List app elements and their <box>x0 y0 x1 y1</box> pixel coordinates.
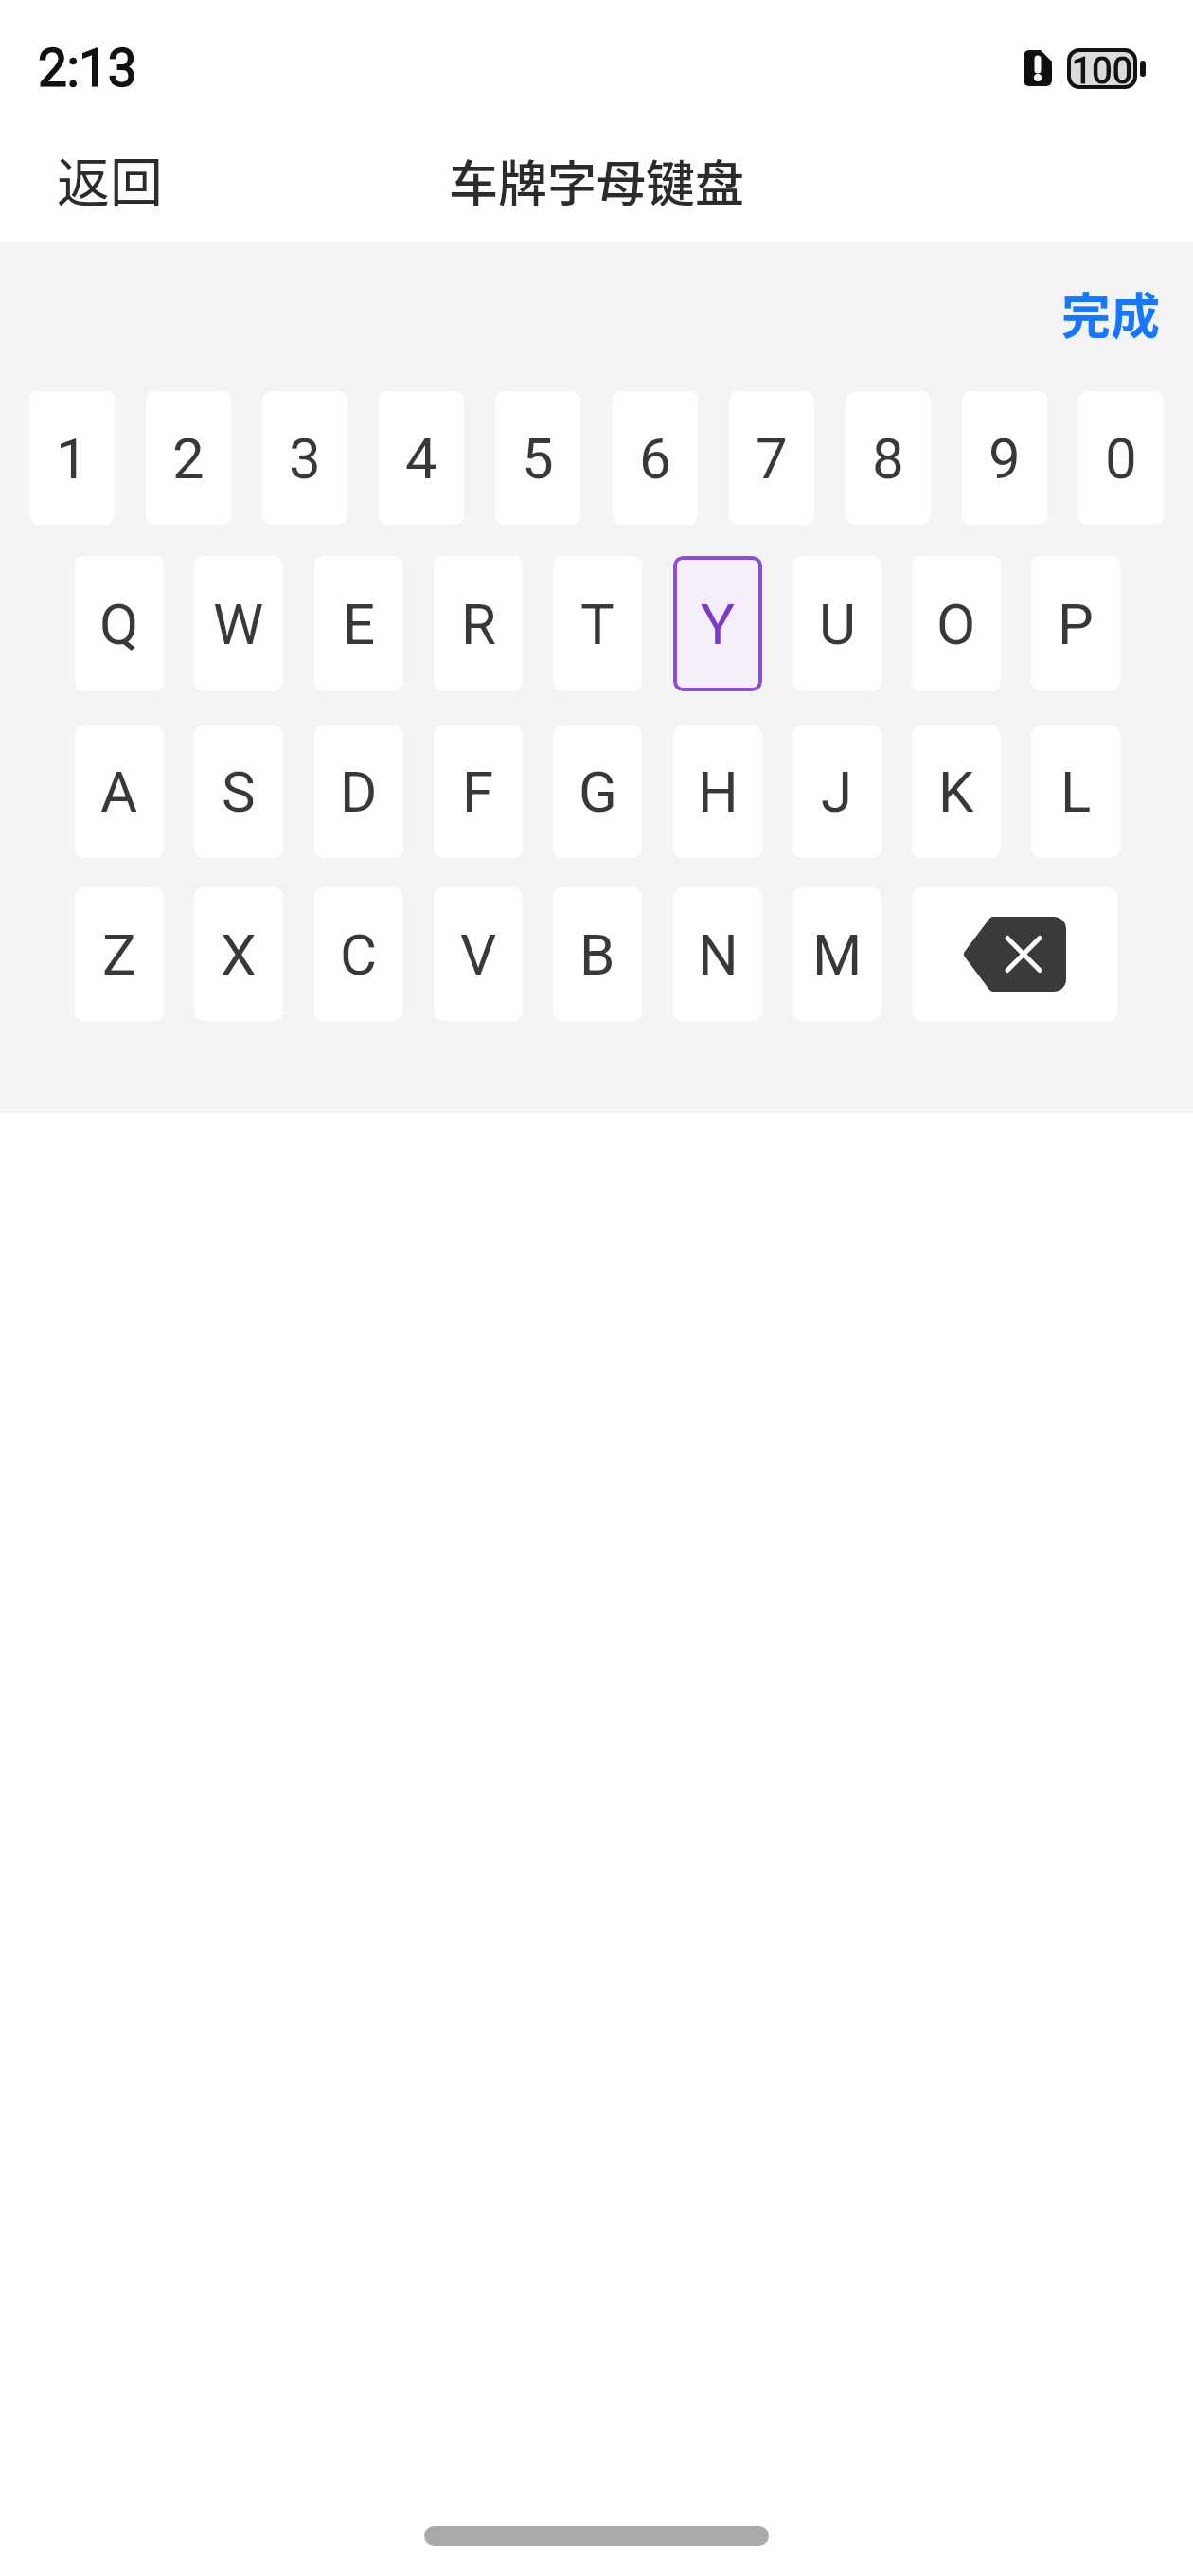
staticText: 2:13 <box>38 38 137 98</box>
staticText: D <box>340 759 378 825</box>
staticText: L <box>1060 759 1092 825</box>
staticText: 6 <box>639 425 671 492</box>
staticText: 返回 <box>57 140 163 217</box>
staticText: O <box>936 591 976 657</box>
button[interactable]: 返回 <box>38 133 144 209</box>
button[interactable]: V <box>434 887 523 1021</box>
staticText: R <box>461 591 496 657</box>
button[interactable]: Q <box>75 556 164 691</box>
staticText: S <box>222 759 256 825</box>
staticText: T <box>580 591 614 657</box>
staticText: Z <box>102 921 136 988</box>
button[interactable]: 0 <box>1078 391 1164 525</box>
staticText: 5 <box>522 425 554 492</box>
button[interactable]: F <box>434 725 523 858</box>
button[interactable]: Z <box>75 887 164 1021</box>
staticText: Y <box>701 591 736 657</box>
button[interactable] <box>912 887 1117 1021</box>
staticText: P <box>1058 591 1094 657</box>
button[interactable]: H <box>673 725 762 858</box>
staticText: V <box>460 921 497 988</box>
button[interactable]: 完成 <box>1049 268 1148 339</box>
staticText: 100 <box>1071 50 1133 93</box>
staticText: B <box>579 921 615 988</box>
staticText: W <box>213 591 264 657</box>
staticText: 3 <box>289 425 321 492</box>
staticText: M <box>812 921 863 988</box>
staticText: N <box>698 921 739 988</box>
button[interactable]: T <box>553 556 642 691</box>
staticText: 8 <box>872 425 904 492</box>
button[interactable]: Y <box>673 556 762 691</box>
button[interactable]: 8 <box>846 391 931 525</box>
staticText: H <box>698 759 739 825</box>
staticText: A <box>100 759 138 825</box>
button[interactable]: 5 <box>495 391 580 525</box>
button[interactable]: 2 <box>146 391 231 525</box>
button[interactable]: P <box>1031 556 1120 691</box>
staticText: G <box>579 759 617 825</box>
staticText: 9 <box>988 425 1021 492</box>
button[interactable]: S <box>194 725 283 858</box>
button[interactable]: O <box>912 556 1001 691</box>
button[interactable]: 7 <box>729 391 814 525</box>
staticText: 4 <box>405 425 437 492</box>
staticText: 完成 <box>1061 277 1161 349</box>
staticText: X <box>221 921 257 988</box>
button[interactable]: 9 <box>962 391 1047 525</box>
button[interactable]: 3 <box>262 391 347 525</box>
button[interactable]: R <box>434 556 523 691</box>
button[interactable]: 4 <box>379 391 464 525</box>
staticText: 车牌字母键盘 <box>449 145 745 216</box>
button[interactable]: W <box>194 556 283 691</box>
button[interactable]: A <box>75 725 164 858</box>
staticText: 0 <box>1105 425 1137 492</box>
staticText: 7 <box>756 425 788 492</box>
button[interactable]: 1 <box>29 391 115 525</box>
staticText: Q <box>99 591 139 657</box>
button[interactable]: K <box>912 725 1001 858</box>
staticText: K <box>938 759 974 825</box>
button[interactable]: D <box>314 725 403 858</box>
staticText: 1 <box>56 425 88 492</box>
staticText: 2 <box>172 425 205 492</box>
button[interactable]: 6 <box>613 391 698 525</box>
button[interactable]: X <box>194 887 283 1021</box>
button[interactable]: M <box>792 887 881 1021</box>
staticText: U <box>819 591 856 657</box>
button[interactable]: C <box>314 887 403 1021</box>
staticText: E <box>343 591 376 657</box>
staticText: C <box>340 921 378 988</box>
button[interactable]: B <box>553 887 642 1021</box>
staticText: J <box>821 759 853 825</box>
button[interactable]: G <box>553 725 642 858</box>
button[interactable]: E <box>314 556 403 691</box>
staticText: F <box>462 759 494 825</box>
button[interactable]: J <box>792 725 881 858</box>
button[interactable]: N <box>673 887 762 1021</box>
button[interactable]: L <box>1031 725 1120 858</box>
button[interactable]: U <box>792 556 881 691</box>
